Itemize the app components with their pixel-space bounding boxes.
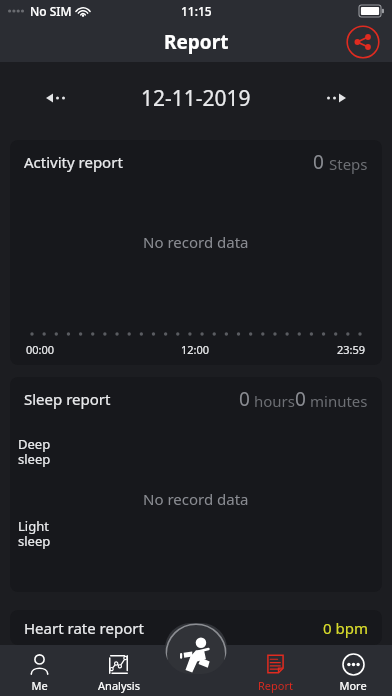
button[interactable]: Sleep report [10,377,382,592]
button[interactable]: Activity report [10,140,382,365]
staticText: Deep sleep [18,435,51,468]
staticText: Report [164,29,229,55]
button[interactable]: Me [0,648,79,693]
staticText: 11:15 [181,3,212,19]
staticText: Sleep report [24,389,111,409]
staticText: No SIM [30,3,72,19]
staticText: Analysis [98,678,140,693]
staticText: 23:59 [337,342,366,357]
staticText: 12:00 [181,342,210,357]
staticText: Steps [329,154,368,174]
staticText: 0 [239,386,250,412]
staticText: hours [254,391,295,411]
staticText: More [339,678,367,693]
button[interactable]: Analysis [79,648,158,693]
button[interactable]: Start workout [165,623,227,674]
staticText: 0 [313,149,324,175]
staticText: 12-11-2019 [141,84,251,113]
staticText: Heart rate report [24,618,144,638]
button[interactable]: Previous day [40,81,82,115]
staticText: Activity report [24,152,123,172]
staticText: Me [31,678,48,693]
button[interactable]: Share [346,25,380,59]
staticText: 00:00 [26,342,55,357]
staticText: 0 [295,386,306,412]
button[interactable]: Report [236,648,314,693]
button[interactable]: Heart rate report [10,610,382,645]
staticText: No record data [143,489,249,509]
button[interactable]: More [314,648,392,693]
button[interactable]: Next day [310,81,352,115]
staticText: Light sleep [18,517,51,550]
staticText: No record data [143,232,249,252]
staticText: 0 bpm [323,618,368,638]
staticText: Report [258,678,293,693]
staticText: minutes [310,391,368,411]
